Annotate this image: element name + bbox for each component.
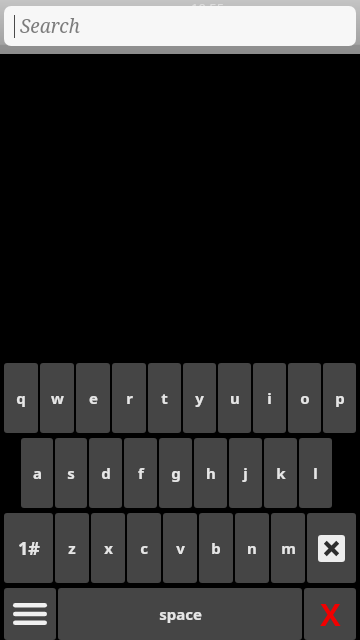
staticText: o xyxy=(300,388,310,408)
button[interactable]: c xyxy=(127,513,161,583)
button[interactable]: h xyxy=(194,438,227,508)
button[interactable]: b xyxy=(199,513,233,583)
button[interactable]: i xyxy=(253,363,286,433)
button[interactable]: l xyxy=(299,438,332,508)
staticText: m xyxy=(281,538,296,558)
button[interactable]: w xyxy=(40,363,74,433)
button[interactable]: e xyxy=(76,363,110,433)
staticText: e xyxy=(89,388,98,408)
button[interactable]: 1# xyxy=(4,513,53,583)
button[interactable]: a xyxy=(21,438,53,508)
button[interactable]: s xyxy=(55,438,87,508)
staticText: space xyxy=(159,604,202,624)
button[interactable]: r xyxy=(112,363,146,433)
staticText: 10:55 xyxy=(191,0,225,17)
button[interactable]: o xyxy=(288,363,321,433)
button[interactable]: z xyxy=(55,513,89,583)
button[interactable]: Search xyxy=(4,6,356,46)
staticText: Search xyxy=(20,13,80,39)
button[interactable]: g xyxy=(159,438,192,508)
button[interactable]: u xyxy=(218,363,251,433)
staticText: q xyxy=(16,388,26,408)
staticText: n xyxy=(247,538,257,558)
button[interactable]: k xyxy=(264,438,297,508)
staticText: t xyxy=(161,388,168,408)
staticText: r xyxy=(126,388,133,408)
staticText: z xyxy=(68,538,76,558)
button[interactable]: Backspace xyxy=(307,513,356,583)
staticText: a xyxy=(33,463,42,483)
button[interactable]: x xyxy=(91,513,125,583)
button[interactable]: t xyxy=(148,363,181,433)
staticText: p xyxy=(335,388,345,408)
staticText: d xyxy=(101,463,111,483)
staticText: h xyxy=(206,463,216,483)
staticText: s xyxy=(67,463,75,483)
button[interactable]: j xyxy=(229,438,262,508)
staticText: j xyxy=(243,463,248,483)
staticText: w xyxy=(51,388,64,408)
button[interactable]: p xyxy=(323,363,356,433)
staticText: y xyxy=(195,388,204,408)
staticText: b xyxy=(211,538,221,558)
staticText: l xyxy=(313,463,318,483)
staticText: i xyxy=(267,388,272,408)
staticText: x xyxy=(104,538,113,558)
staticText: c xyxy=(140,538,148,558)
staticText: v xyxy=(176,538,185,558)
button[interactable]: Close keyboard xyxy=(304,588,356,640)
staticText: X xyxy=(320,593,341,635)
button[interactable]: v xyxy=(163,513,197,583)
button[interactable]: f xyxy=(124,438,157,508)
button[interactable]: y xyxy=(183,363,216,433)
staticText: f xyxy=(138,463,144,483)
staticText: g xyxy=(171,463,181,483)
staticText: u xyxy=(230,388,240,408)
button[interactable]: d xyxy=(89,438,122,508)
button[interactable]: n xyxy=(235,513,269,583)
staticText: 1# xyxy=(18,536,40,561)
staticText: k xyxy=(276,463,286,483)
button[interactable]: Keyboard menu xyxy=(4,588,56,640)
button[interactable]: q xyxy=(4,363,38,433)
button[interactable]: m xyxy=(271,513,305,583)
button[interactable]: space xyxy=(58,588,302,640)
